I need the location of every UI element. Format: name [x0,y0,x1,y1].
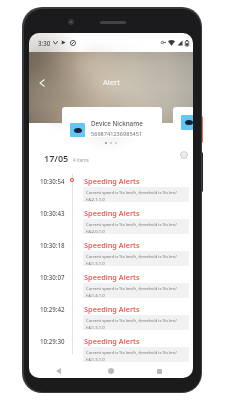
staticText: 4 items [73,157,89,163]
staticText: h&1.4.1.0 [86,293,105,298]
staticText: Speeding Alerts [84,176,140,186]
staticText: h&2.0.1.0 [86,229,105,234]
staticText: 10:29:42 [40,305,65,313]
button[interactable]: 10:29:30 [29,326,193,358]
staticText: 10:30:54 [40,177,65,185]
staticText: Current speed is %s km/h, threshold is %… [86,318,177,324]
button[interactable]: Back [48,361,68,378]
staticText: Current speed is %s km/h, threshold is %… [86,286,177,292]
button[interactable]: Back [31,72,53,94]
staticText: Speeding Alerts [84,336,140,346]
staticText: h&1.3.1.0 [86,261,105,266]
staticText: Speeding Alerts [84,240,140,250]
staticText: Current speed is %s km/h, threshold is %… [86,254,177,260]
staticText: 5698741236985451 [91,130,143,137]
staticText: 3:30 [38,39,51,47]
button[interactable]: Device Nickname [62,107,162,137]
staticText: 17/05 [44,152,69,164]
button[interactable]: 10:30:54 [29,166,193,198]
button[interactable]: 10:30:43 [29,198,193,230]
button[interactable]: Settings [177,148,191,162]
staticText: Device Nickname [91,119,143,128]
staticText: Current speed is %s km/h, threshold is %… [86,222,177,228]
button[interactable]: 10:29:42 [29,294,193,326]
button[interactable]: Recents [149,361,169,378]
button[interactable]: 10:30:18 [29,230,193,262]
staticText: h&1.3.1.0 [86,325,105,330]
staticText: h&2.1.1.0 [86,197,105,202]
button[interactable]: 10:30:07 [29,262,193,294]
staticText: 10:30:43 [40,209,65,217]
staticText: Alert [103,77,120,87]
button[interactable]: Home [101,361,121,378]
staticText: 10:30:07 [40,273,65,281]
staticText: Current speed is %s km/h, threshold is %… [86,350,177,356]
staticText: h&1.3.1.0 [86,357,105,362]
staticText: Speeding Alerts [84,304,140,314]
staticText: Speeding Alerts [84,208,140,218]
staticText: 10:30:18 [40,241,65,249]
staticText: Speeding Alerts [84,272,140,282]
staticText: 10:29:30 [40,337,65,345]
staticText: Current speed is %s km/h, threshold is %… [86,190,177,196]
